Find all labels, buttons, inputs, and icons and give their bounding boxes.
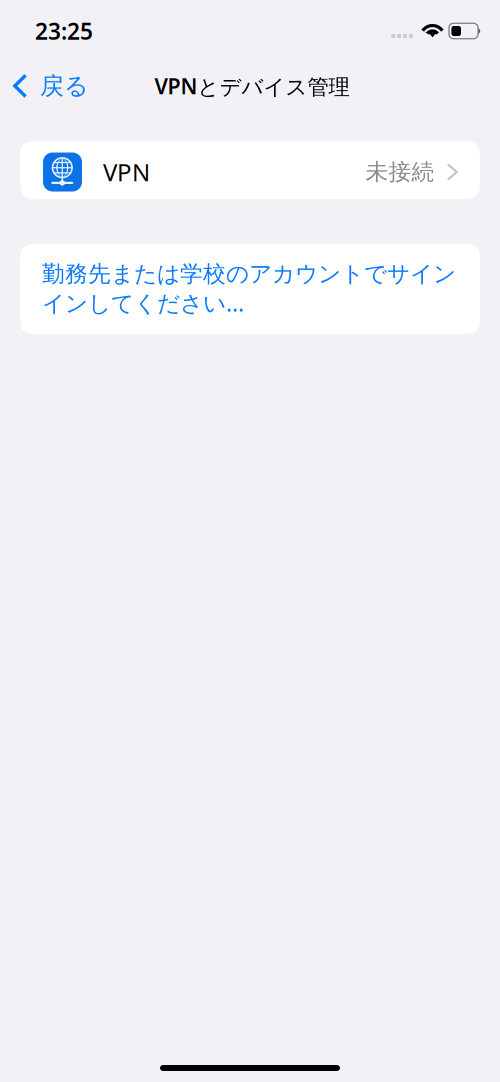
button[interactable]: VPN — [20, 141, 480, 199]
button[interactable]: 勤務先または学校のアカウントでサインインしてください... — [20, 244, 480, 334]
staticText: VPN — [103, 156, 150, 188]
button[interactable]: 戻る — [0, 64, 99, 108]
staticText: 勤務先または学校のアカウントでサインインしてください... — [42, 260, 456, 318]
staticText: 23:25 — [35, 16, 93, 46]
staticText: VPNとデバイス管理 — [154, 72, 349, 100]
staticText: 未接続 — [365, 158, 434, 186]
staticText: 戻る — [40, 71, 89, 101]
